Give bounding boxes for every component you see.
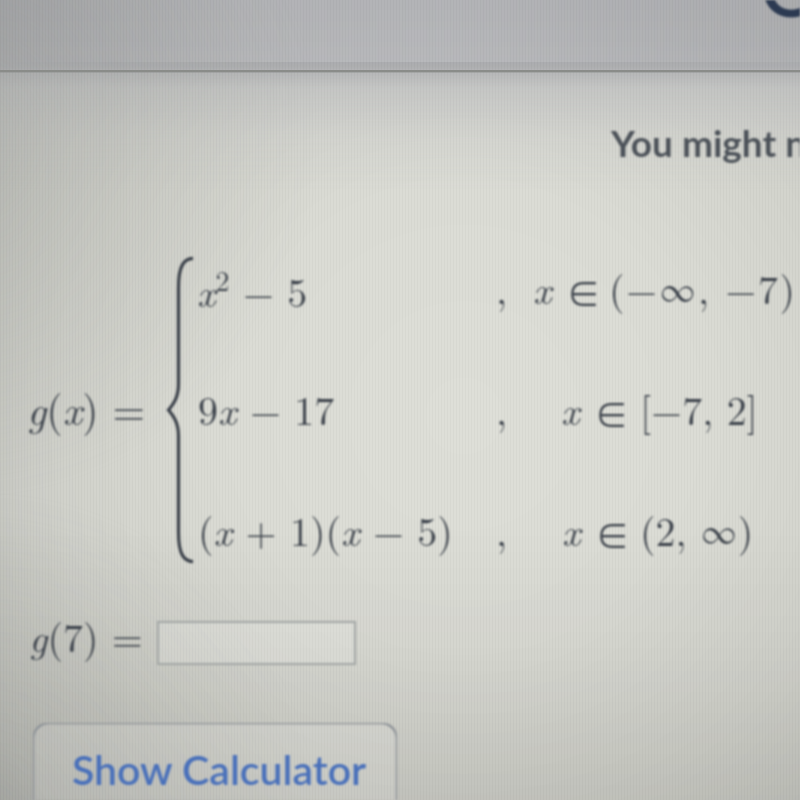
staticText: (x + 1)(x − 5) (198, 501, 453, 558)
staticText: ∈ (596, 396, 628, 436)
staticText: 9x − 17 (198, 380, 335, 437)
staticText: [−7, 2] (640, 380, 758, 437)
staticText: ∈ (568, 275, 600, 315)
staticText: , (496, 259, 508, 316)
staticText: (2, ∞) (640, 501, 754, 558)
staticText: Q (760, 0, 800, 34)
staticText: g(7) = (29, 607, 143, 664)
staticText: ∈ (597, 517, 629, 557)
staticText: x (533, 259, 552, 316)
button[interactable]: Answer input (158, 622, 355, 664)
staticText: You might n (611, 120, 800, 164)
staticText: , (496, 501, 508, 558)
staticText: Show Calculator (72, 745, 367, 794)
staticText: x2 − 5 (197, 259, 308, 319)
staticText: (−∞, −7) (609, 259, 797, 316)
button[interactable]: Show Calculator (33, 723, 397, 800)
staticText: x (562, 501, 581, 558)
staticText: x (561, 380, 580, 437)
staticText: , (496, 380, 508, 437)
staticText: g(x) = (27, 378, 146, 438)
